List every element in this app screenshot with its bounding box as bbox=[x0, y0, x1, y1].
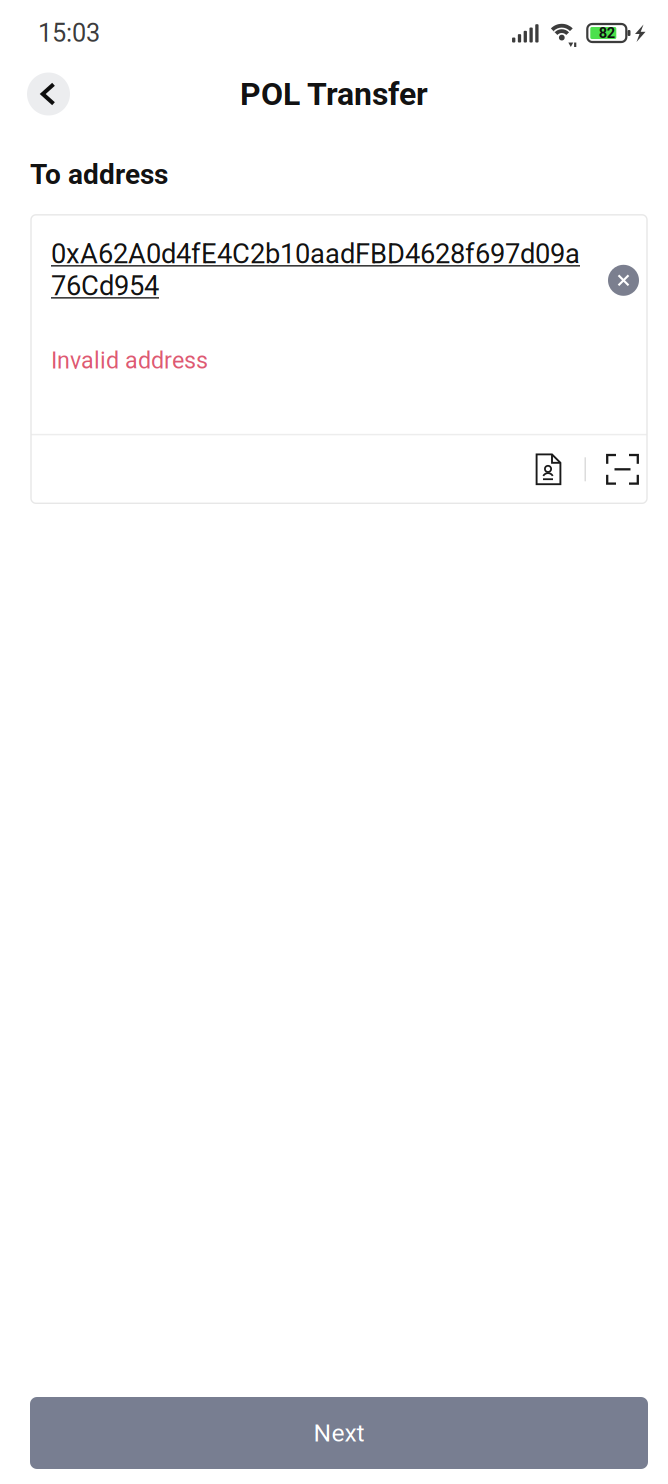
button[interactable]: Scan QR code bbox=[606, 454, 639, 485]
button[interactable]: Back bbox=[27, 72, 70, 115]
staticText: 82 bbox=[599, 24, 615, 42]
staticText: POL Transfer bbox=[240, 75, 428, 113]
button[interactable]: Clear address bbox=[608, 265, 639, 296]
staticText: Next bbox=[313, 1418, 364, 1447]
button[interactable]: Choose from contacts bbox=[535, 453, 561, 485]
staticText: 76Cd954 bbox=[51, 270, 159, 302]
staticText: 15:03 bbox=[38, 18, 100, 48]
button[interactable]: Next bbox=[30, 1397, 648, 1469]
staticText: To address bbox=[30, 158, 168, 191]
staticText: 0xA62A0d4fE4C2b10aadFBD4628f697d09a bbox=[51, 238, 580, 270]
staticText: Invalid address bbox=[51, 347, 208, 374]
